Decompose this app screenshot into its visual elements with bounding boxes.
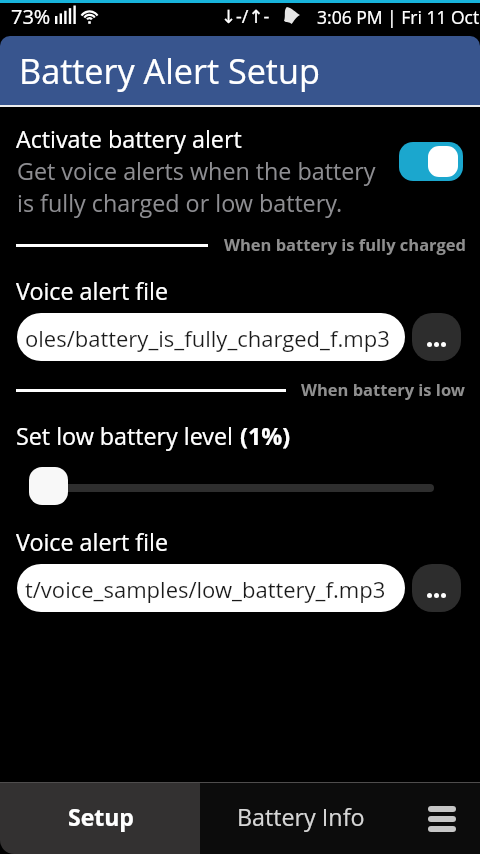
staticText: Setup: [68, 801, 134, 832]
staticText: ↓-/↑-: [221, 4, 270, 29]
button[interactable]: t/voice_samples/low_battery_f.mp3: [17, 564, 405, 612]
button[interactable]: Browse file: [412, 313, 461, 361]
staticText: Set low battery level: [16, 420, 240, 452]
staticText: Voice alert file: [16, 526, 169, 558]
staticText: t/voice_samples/low_battery_f.mp3: [25, 574, 386, 604]
button[interactable]: oles/battery_is_fully_charged_f.mp3: [17, 313, 405, 361]
button[interactable]: Low battery level: [29, 467, 68, 505]
staticText: When battery is low: [301, 378, 465, 400]
button[interactable]: Menu: [403, 783, 480, 854]
staticText: Voice alert file: [16, 275, 169, 307]
staticText: Battery Alert Setup: [19, 47, 320, 94]
button[interactable]: Setup: [0, 783, 200, 854]
staticText: oles/battery_is_fully_charged_f.mp3: [25, 323, 390, 353]
button[interactable]: Browse file: [412, 564, 461, 612]
staticText: is fully charged or low battery.: [17, 187, 343, 219]
staticText: When battery is fully charged: [224, 233, 466, 255]
staticText: Battery Info: [237, 801, 365, 833]
staticText: Get voice alerts when the battery: [17, 155, 376, 187]
staticText: Activate battery alert: [16, 123, 242, 155]
staticText: 73%: [11, 3, 51, 30]
button[interactable]: Battery Info: [200, 783, 403, 854]
button[interactable]: Activate battery alert: [399, 142, 463, 181]
staticText: (1%): [240, 420, 291, 452]
staticText: 3:06 PM | Fri 11 Oct: [317, 5, 480, 29]
